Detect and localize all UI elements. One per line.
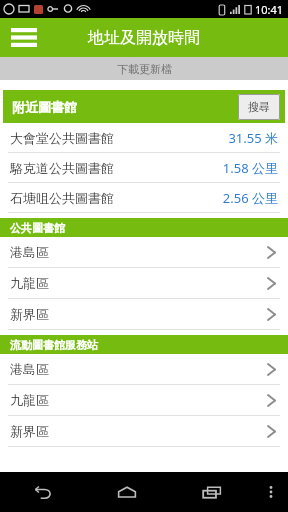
button[interactable]: 石塘咀公共圖書館 <box>0 183 288 213</box>
staticText: 石塘咀公共圖書館 <box>10 190 222 206</box>
staticText: 港島區 <box>10 244 267 260</box>
button[interactable]: 新界區 <box>0 416 288 447</box>
button[interactable]: 大會堂公共圖書館 <box>0 123 288 153</box>
button[interactable]: More options <box>254 472 288 512</box>
staticText: 新界區 <box>10 306 267 322</box>
staticText: 下載更新檔 <box>117 62 172 76</box>
staticText: 駱克道公共圖書館 <box>10 160 222 176</box>
button[interactable]: Back <box>0 472 84 512</box>
button[interactable]: 駱克道公共圖書館 <box>0 153 288 183</box>
staticText: 九龍區 <box>10 275 267 291</box>
button[interactable]: 港島區 <box>0 237 288 268</box>
staticText: 港島區 <box>10 361 267 377</box>
button[interactable]: 九龍區 <box>0 268 288 299</box>
staticText: 地址及開放時間 <box>88 28 200 48</box>
staticText: 九龍區 <box>10 392 267 408</box>
staticText: 10:41 <box>255 2 284 17</box>
staticText: 1.58 公里 <box>222 159 278 177</box>
button[interactable]: Recent apps <box>169 472 254 512</box>
staticText: 流動圖書館服務站 <box>10 338 98 352</box>
staticText: 公共圖書館 <box>10 221 65 235</box>
button[interactable]: Menu <box>0 18 48 57</box>
button[interactable]: 九龍區 <box>0 385 288 416</box>
staticText: 2.56 公里 <box>222 189 278 207</box>
staticText: 大會堂公共圖書館 <box>10 130 228 146</box>
button[interactable]: 搜尋 <box>238 94 280 120</box>
staticText: 31.55 米 <box>228 129 278 147</box>
button[interactable]: Home <box>84 472 169 512</box>
button[interactable]: 下載更新檔 <box>0 57 288 80</box>
button[interactable]: 新界區 <box>0 299 288 330</box>
staticText: 搜尋 <box>248 100 270 114</box>
button[interactable]: 港島區 <box>0 354 288 385</box>
staticText: 附近圖書館 <box>12 99 77 115</box>
staticText: 新界區 <box>10 423 267 439</box>
